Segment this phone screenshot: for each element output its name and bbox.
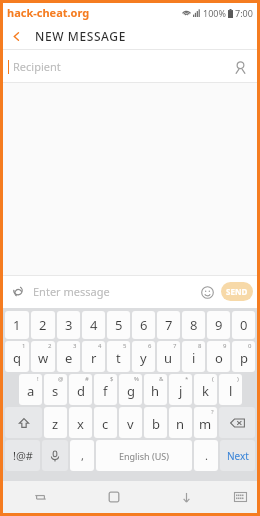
- staticText: (: [212, 375, 214, 383]
- button[interactable]: 5: [107, 341, 130, 372]
- staticText: ): [237, 375, 239, 383]
- button[interactable]: 5: [107, 311, 130, 339]
- button[interactable]: %: [119, 374, 142, 405]
- staticText: y: [140, 349, 147, 367]
- button[interactable]: 0: [232, 341, 255, 372]
- button[interactable]: 2: [31, 341, 55, 372]
- staticText: 9: [223, 342, 227, 350]
- staticText: s: [52, 382, 59, 400]
- staticText: c: [102, 415, 109, 433]
- staticText: t: [116, 349, 121, 367]
- staticText: i: [192, 349, 196, 367]
- staticText: *: [185, 375, 189, 383]
- button[interactable]: z: [44, 407, 67, 438]
- button[interactable]: #: [69, 374, 92, 405]
- button[interactable]: .: [194, 440, 218, 471]
- staticText: ,: [81, 448, 84, 463]
- staticText: z: [52, 415, 59, 433]
- staticText: 2: [39, 316, 47, 334]
- button[interactable]: 6: [132, 341, 155, 372]
- button[interactable]: 1: [5, 341, 29, 372]
- button[interactable]: ?: [194, 407, 217, 438]
- button[interactable]: *: [169, 374, 192, 405]
- staticText: 1: [22, 342, 26, 350]
- staticText: 3: [65, 316, 73, 334]
- button[interactable]: !: [19, 374, 42, 405]
- button[interactable]: Shift: [5, 407, 42, 438]
- button[interactable]: c: [94, 407, 117, 438]
- staticText: &: [159, 375, 164, 383]
- button[interactable]: 3: [57, 311, 80, 339]
- button[interactable]: (: [194, 374, 217, 405]
- button[interactable]: Hide keyboard: [150, 481, 223, 513]
- staticText: NEW MESSAGE: [35, 28, 126, 44]
- button[interactable]: Enter message: [33, 284, 196, 299]
- staticText: m: [199, 415, 212, 433]
- button[interactable]: 9: [207, 341, 230, 372]
- button[interactable]: &: [144, 374, 167, 405]
- staticText: 8: [198, 342, 202, 350]
- staticText: Next: [227, 449, 249, 463]
- staticText: 6: [140, 316, 148, 334]
- staticText: !@#: [13, 448, 33, 463]
- button[interactable]: 8: [182, 311, 205, 339]
- button[interactable]: Home: [77, 481, 150, 513]
- staticText: 4: [90, 316, 98, 334]
- button[interactable]: x: [69, 407, 92, 438]
- button[interactable]: 4: [82, 311, 105, 339]
- button[interactable]: Emoji: [196, 281, 218, 303]
- button[interactable]: 3: [57, 341, 80, 372]
- staticText: 3: [73, 342, 77, 350]
- button[interactable]: Add recipient from contacts: [229, 56, 251, 78]
- staticText: SEND: [226, 286, 248, 297]
- staticText: p: [240, 349, 248, 367]
- button[interactable]: Next: [220, 440, 255, 471]
- staticText: d: [77, 382, 85, 400]
- staticText: l: [229, 382, 233, 400]
- staticText: 100%: [203, 7, 226, 19]
- button[interactable]: b: [144, 407, 167, 438]
- button[interactable]: 9: [207, 311, 230, 339]
- button[interactable]: Attach: [7, 281, 29, 303]
- staticText: u: [164, 349, 173, 367]
- button[interactable]: Recents: [3, 481, 77, 513]
- button[interactable]: 0: [232, 311, 255, 339]
- staticText: f: [103, 382, 108, 400]
- button[interactable]: v: [119, 407, 142, 438]
- button[interactable]: 6: [132, 311, 155, 339]
- button[interactable]: 1: [5, 311, 29, 339]
- button[interactable]: Voice input: [42, 440, 68, 471]
- staticText: 8: [190, 316, 198, 334]
- button[interactable]: 7: [157, 341, 180, 372]
- button[interactable]: @: [44, 374, 67, 405]
- staticText: 7: [173, 342, 177, 350]
- button[interactable]: English (US): [96, 440, 192, 471]
- staticText: x: [77, 415, 84, 433]
- staticText: g: [127, 382, 135, 400]
- button[interactable]: SEND: [221, 282, 253, 301]
- button[interactable]: Backspace: [219, 407, 255, 438]
- button[interactable]: Back: [3, 23, 29, 49]
- button[interactable]: 7: [157, 311, 180, 339]
- staticText: 2: [48, 342, 52, 350]
- button[interactable]: 4: [82, 341, 105, 372]
- staticText: $: [110, 375, 114, 383]
- staticText: 0: [240, 316, 248, 334]
- staticText: j: [179, 382, 183, 400]
- staticText: 0: [248, 342, 252, 350]
- button[interactable]: ): [219, 374, 242, 405]
- staticText: b: [152, 415, 160, 433]
- button[interactable]: !@#: [5, 440, 40, 471]
- button[interactable]: 8: [182, 341, 205, 372]
- staticText: a: [27, 382, 35, 400]
- button[interactable]: Recipient: [3, 50, 257, 83]
- button[interactable]: ,: [70, 440, 94, 471]
- staticText: 7: [165, 316, 173, 334]
- button[interactable]: n: [169, 407, 192, 438]
- button[interactable]: 2: [31, 311, 55, 339]
- staticText: 6: [148, 342, 152, 350]
- staticText: o: [215, 349, 223, 367]
- button[interactable]: Switch keyboard: [223, 481, 257, 513]
- button[interactable]: $: [94, 374, 117, 405]
- staticText: v: [127, 415, 134, 433]
